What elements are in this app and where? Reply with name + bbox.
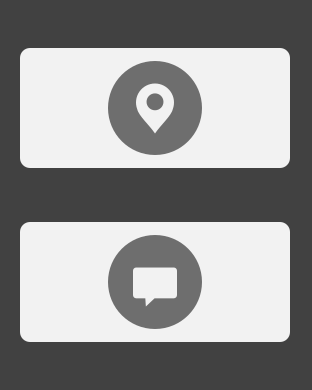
button[interactable]: Location <box>20 48 290 168</box>
button[interactable]: Messages <box>20 222 290 342</box>
